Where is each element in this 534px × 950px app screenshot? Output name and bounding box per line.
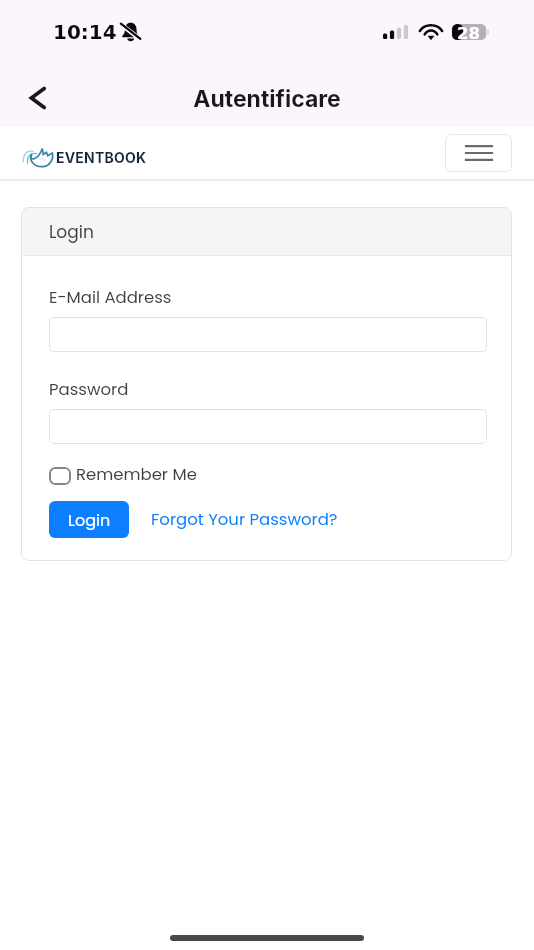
button[interactable]: Open navigation menu [445, 134, 512, 172]
button[interactable]: Forgot Your Password? [142, 501, 329, 538]
staticText: 10:14 [53, 20, 117, 43]
staticText: E-Mail Address [49, 286, 172, 309]
button[interactable]: Login [49, 501, 129, 538]
button[interactable]: Remember Me [49, 461, 197, 487]
staticText: 28 [457, 24, 480, 40]
staticText: Remember Me [76, 463, 197, 486]
staticText: EVENTBOOK [56, 149, 147, 166]
staticText: Login [49, 220, 94, 244]
button[interactable]: Back [16, 76, 60, 120]
staticText: Login [68, 509, 111, 531]
staticText: Forgot Your Password? [151, 508, 338, 531]
button[interactable]: Password input [49, 409, 487, 444]
staticText: Password [49, 378, 129, 401]
button[interactable]: E-Mail Address input [49, 317, 487, 352]
staticText: Autentificare [0, 85, 534, 113]
